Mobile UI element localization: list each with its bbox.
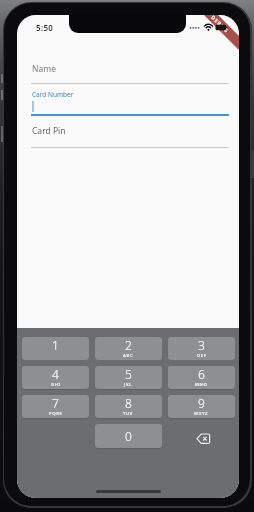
staticText: TUV	[123, 411, 134, 417]
button[interactable]: Card Pin	[31, 120, 229, 148]
button[interactable]: 8	[95, 395, 162, 418]
button[interactable]: 0	[95, 424, 162, 448]
button[interactable]: 5	[95, 366, 162, 389]
staticText: WXYZ	[194, 411, 209, 417]
staticText: 4	[52, 366, 59, 382]
staticText: 1	[52, 337, 59, 353]
staticText: ABC	[123, 353, 134, 359]
staticText: 3	[198, 337, 205, 353]
staticText: PQRS	[49, 411, 63, 417]
staticText: DEF	[197, 353, 207, 359]
staticText: Name	[32, 63, 56, 75]
staticText: 6	[198, 366, 205, 382]
staticText: 7	[52, 395, 59, 411]
button[interactable]: 1	[22, 337, 89, 360]
button[interactable]	[196, 433, 211, 445]
button[interactable]: 2	[95, 337, 162, 360]
button[interactable]: 6	[168, 366, 235, 389]
staticText: 8	[125, 395, 132, 411]
staticText: Card Pin	[32, 125, 66, 137]
button[interactable]: 9	[168, 395, 235, 418]
button[interactable]: 3	[168, 337, 235, 360]
staticText: JKL	[124, 382, 133, 388]
staticText: Card Number	[32, 90, 74, 99]
button[interactable]: 7	[22, 395, 89, 418]
button[interactable]: 4	[22, 366, 89, 389]
staticText: 0	[125, 428, 132, 444]
staticText: 5:50	[36, 22, 54, 33]
button[interactable]: Name	[31, 58, 229, 84]
button[interactable]: Card Number	[31, 88, 229, 116]
staticText: 5	[125, 366, 132, 382]
staticText: MNO	[195, 382, 208, 388]
staticText: 2	[125, 337, 132, 353]
staticText: DEBUG	[209, 15, 231, 35]
staticText: GHI	[51, 382, 61, 388]
staticText: 9	[198, 395, 205, 411]
